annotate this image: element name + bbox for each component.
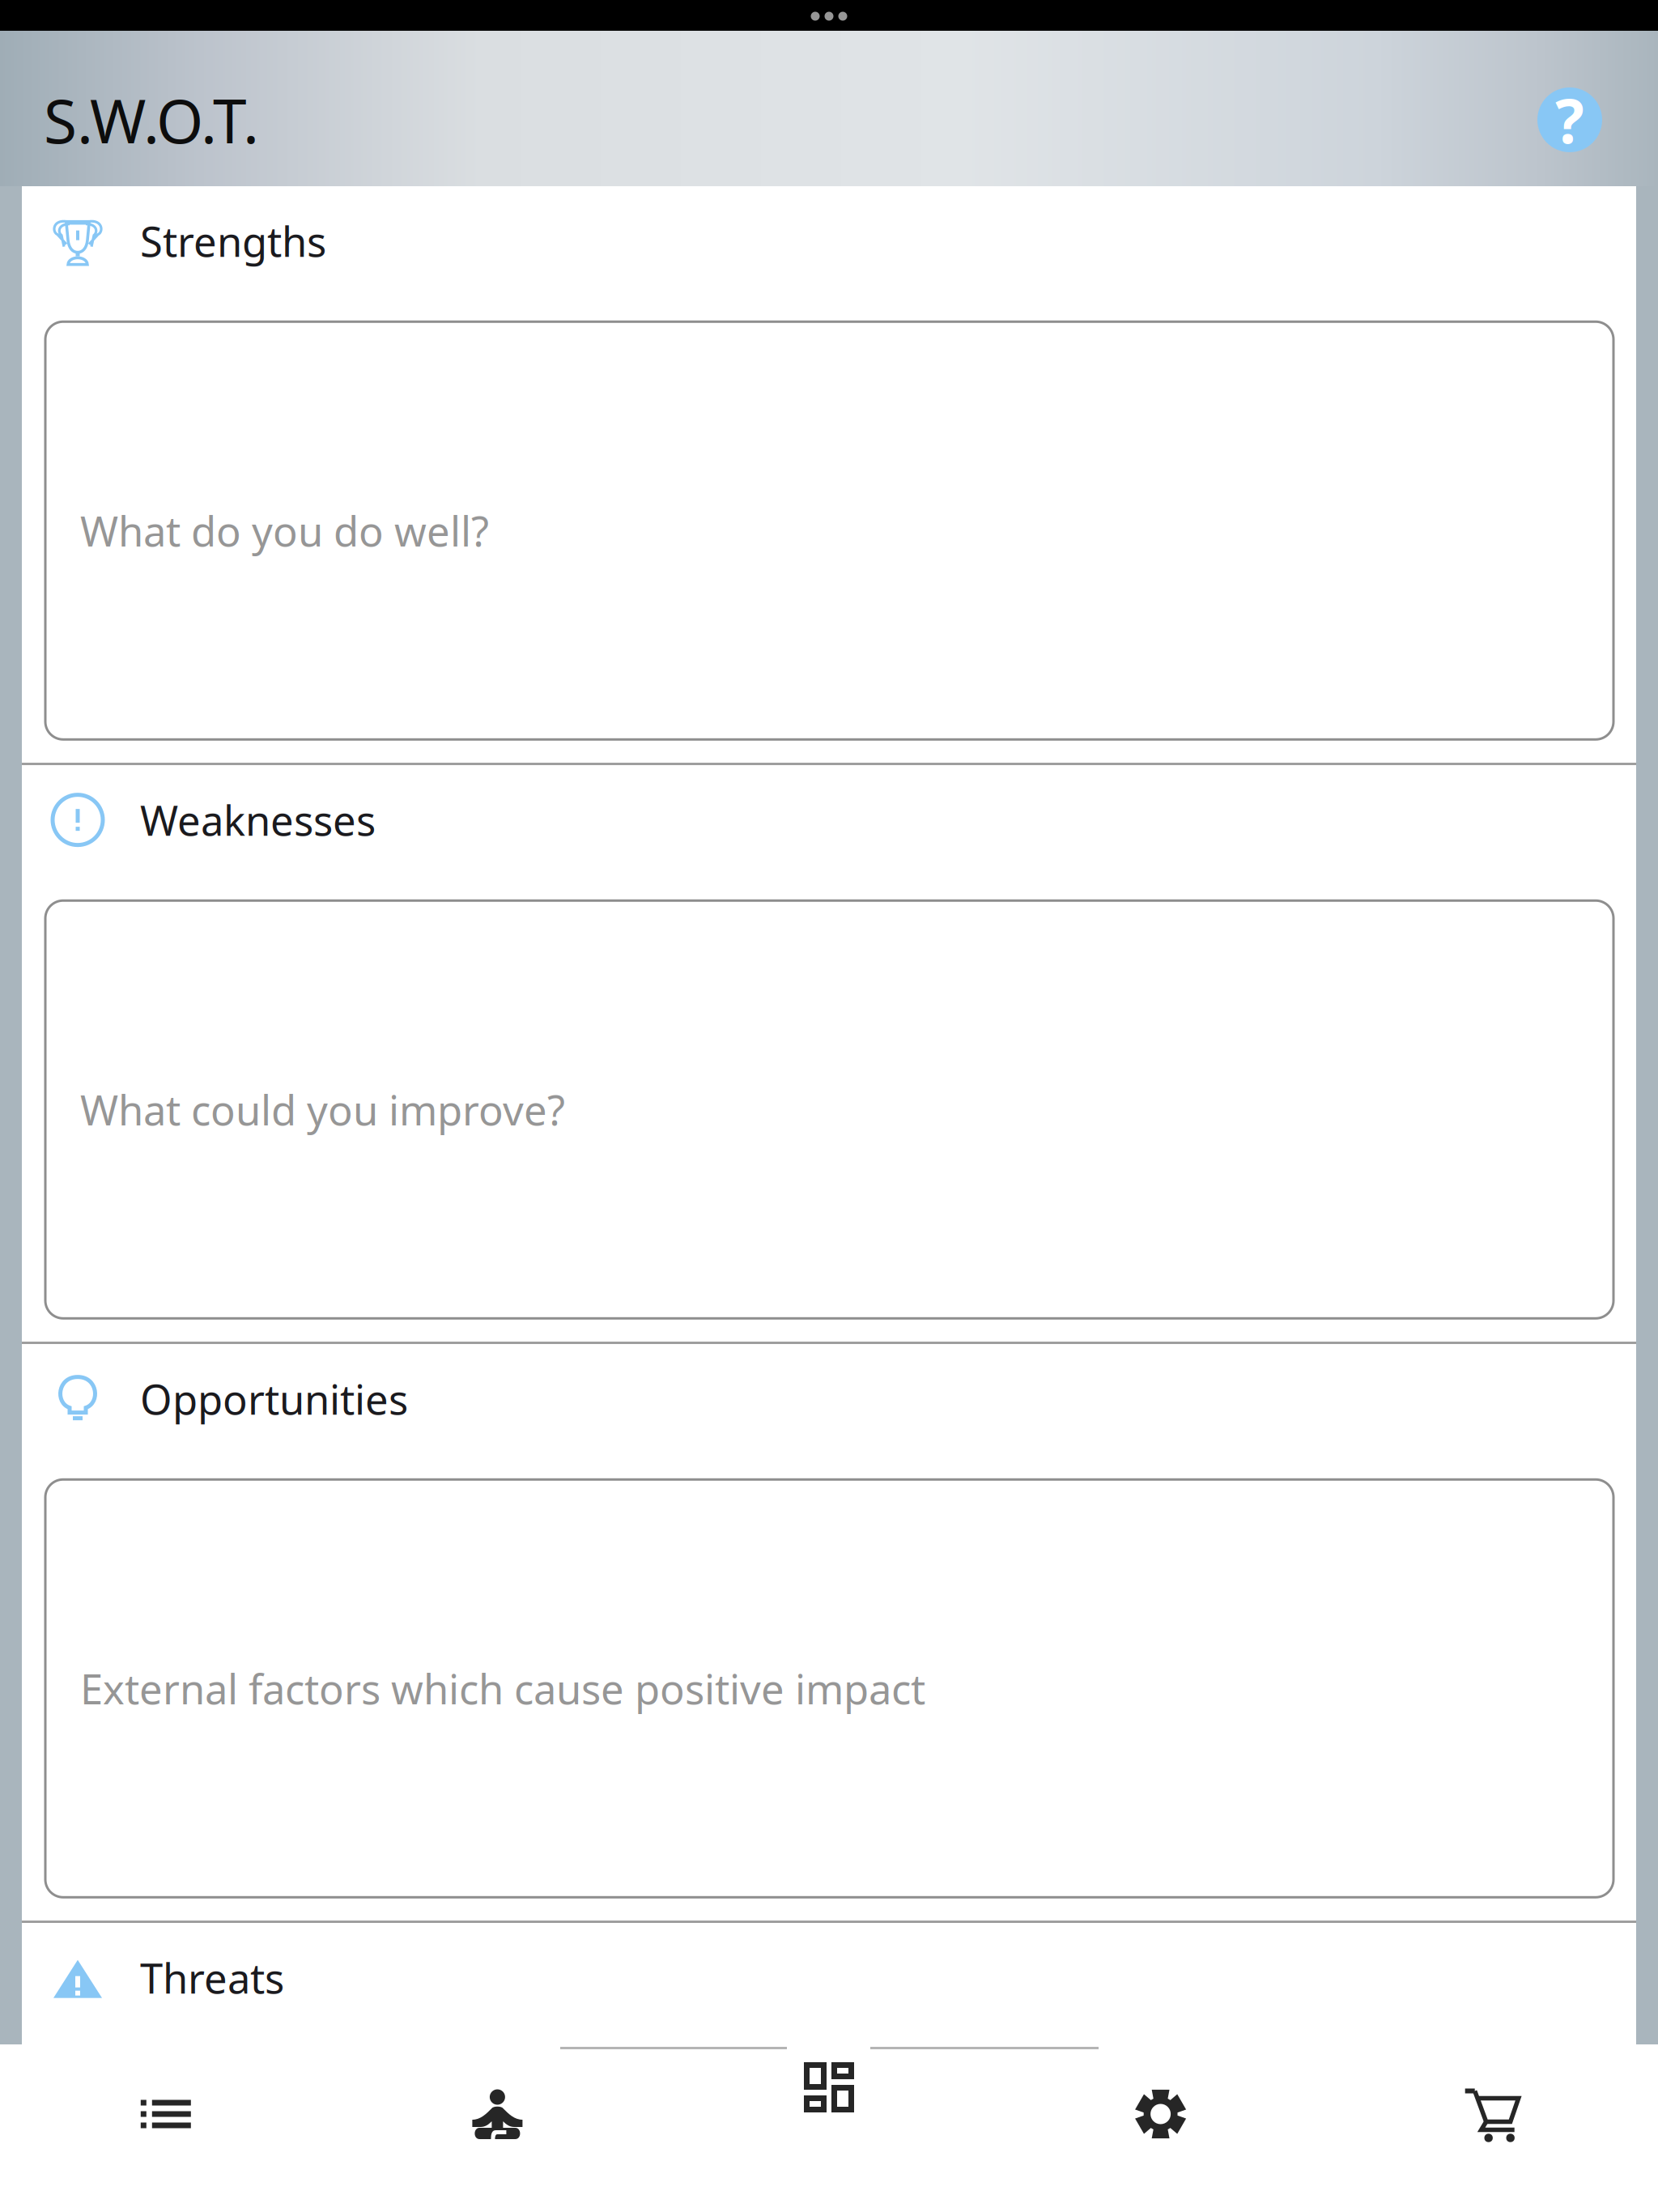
staticText: ? xyxy=(1555,80,1584,160)
staticText: Weaknesses xyxy=(140,793,376,847)
button[interactable]: Store xyxy=(1326,2044,1658,2184)
button[interactable]: Meditation xyxy=(332,2044,663,2184)
staticText: Threats xyxy=(140,1950,284,2005)
staticText: External factors which cause positive im… xyxy=(80,1661,925,1716)
staticText: What do you do well? xyxy=(80,503,489,558)
staticText: What could you improve? xyxy=(80,1082,565,1137)
button[interactable]: Dashboard xyxy=(663,2044,995,2184)
button[interactable]: Help xyxy=(1529,79,1610,160)
staticText: Opportunities xyxy=(140,1372,408,1426)
button[interactable]: Settings xyxy=(995,2044,1326,2184)
button[interactable]: List xyxy=(0,2044,332,2184)
staticText: S.W.O.T. xyxy=(44,80,259,160)
staticText: Strengths xyxy=(140,214,326,268)
